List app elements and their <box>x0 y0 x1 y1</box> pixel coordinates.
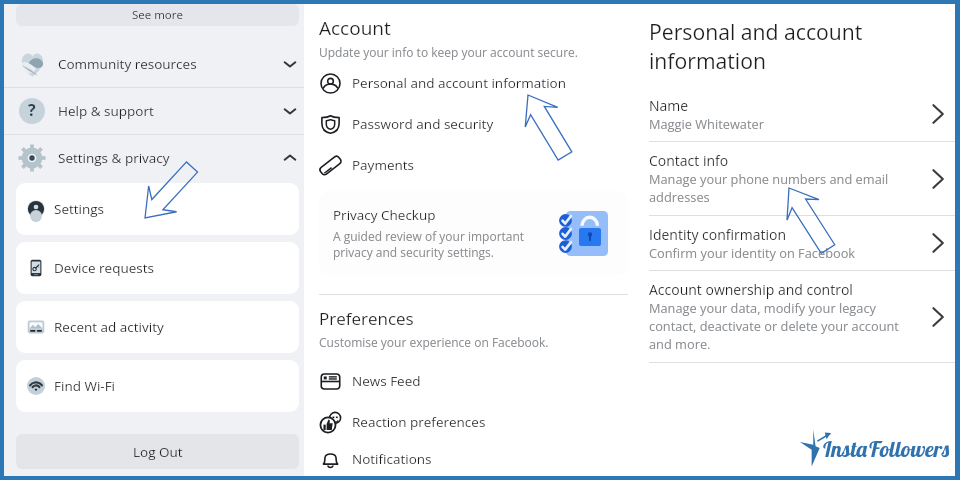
button[interactable]: Privacy Checkup <box>319 191 628 275</box>
staticText: Settings & privacy <box>58 149 170 167</box>
staticText: Privacy Checkup <box>333 206 436 224</box>
button[interactable]: Name <box>649 87 955 141</box>
staticText: Payments <box>352 156 414 174</box>
button[interactable]: Log Out <box>16 434 299 469</box>
staticText: Community resources <box>58 55 197 73</box>
staticText: Settings <box>54 200 105 218</box>
staticText: A guided review of your important privac… <box>333 228 525 260</box>
staticText: Notifications <box>352 450 432 468</box>
button[interactable]: Contact info <box>649 142 955 215</box>
staticText: Maggie Whitewater <box>649 115 764 132</box>
button[interactable]: Notifications <box>319 442 640 476</box>
staticText: Account ownership and control <box>649 280 853 299</box>
staticText: Preferences <box>319 307 414 330</box>
button[interactable]: Payments <box>319 144 640 185</box>
staticText: Personal and account information <box>649 17 863 75</box>
staticText: Contact info <box>649 151 729 170</box>
button[interactable]: Settings & privacy <box>4 135 304 181</box>
staticText: Recent ad activity <box>54 318 164 336</box>
button[interactable]: Reaction preferences <box>319 401 640 442</box>
staticText: Manage your phone numbers and email addr… <box>649 170 889 206</box>
button[interactable]: Settings <box>16 183 299 235</box>
button[interactable]: Community resources <box>4 41 304 87</box>
staticText: Reaction preferences <box>352 413 486 431</box>
staticText: Manage your data, modify your legacy con… <box>649 299 899 353</box>
staticText: InstaFollowers <box>822 435 951 463</box>
button[interactable]: Password and security <box>319 103 640 144</box>
staticText: Update your info to keep your account se… <box>319 44 578 60</box>
staticText: Customise your experience on Facebook. <box>319 334 549 350</box>
staticText: Account <box>319 15 391 41</box>
staticText: Confirm your identity on Facebook <box>649 244 856 261</box>
staticText: Help & support <box>58 102 154 120</box>
button[interactable]: See more <box>16 4 299 26</box>
staticText: Find Wi-Fi <box>54 377 116 395</box>
button[interactable]: Identity confirmation <box>649 216 955 270</box>
staticText: Password and security <box>352 115 494 133</box>
staticText: Log Out <box>133 443 183 461</box>
button[interactable]: Account ownership and control <box>649 271 955 362</box>
button[interactable]: Personal and account information <box>319 62 640 103</box>
staticText: Personal and account information <box>352 74 566 92</box>
button[interactable]: Recent ad activity <box>16 301 299 353</box>
staticText: News Feed <box>352 372 421 390</box>
staticText: See more <box>132 7 183 23</box>
staticText: Name <box>649 96 689 115</box>
button[interactable]: Device requests <box>16 242 299 294</box>
button[interactable]: News Feed <box>319 360 640 401</box>
button[interactable]: Find Wi-Fi <box>16 360 299 412</box>
staticText: Device requests <box>54 259 154 277</box>
button[interactable]: ? <box>4 88 304 134</box>
staticText: ? <box>28 99 36 121</box>
staticText: Identity confirmation <box>649 225 787 244</box>
